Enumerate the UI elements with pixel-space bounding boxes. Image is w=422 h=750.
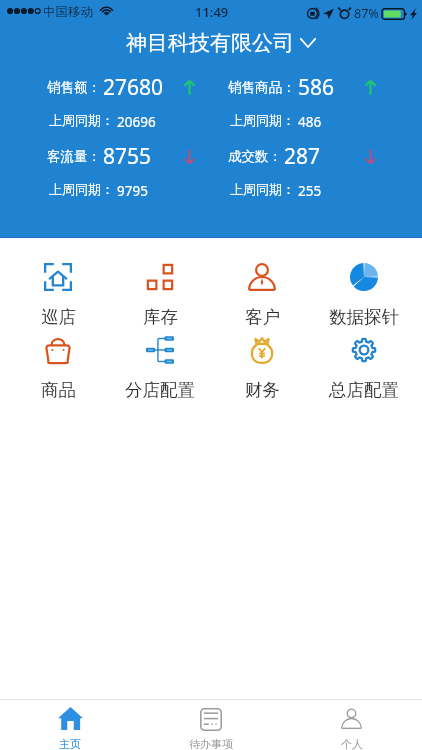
staticText: 上周同期： — [230, 181, 295, 197]
staticText: 销售额： — [47, 79, 101, 96]
button[interactable]: 总店配置 — [313, 336, 415, 401]
staticText: 11:49 — [195, 3, 229, 21]
staticText: 上周同期： — [49, 181, 114, 197]
staticText: 8755 — [103, 142, 152, 171]
staticText: 库存 — [143, 306, 178, 328]
staticText: 财务 — [245, 379, 280, 401]
button[interactable]: 巡店 — [7, 263, 109, 328]
staticText: 主页 — [59, 737, 81, 750]
staticText: 客户 — [245, 306, 280, 328]
staticText: 数据探针 — [329, 306, 399, 328]
staticText: 9795 — [117, 182, 148, 200]
staticText: 上周同期： — [49, 112, 114, 128]
button[interactable]: 商品 — [7, 336, 109, 401]
staticText: 27680 — [103, 73, 164, 102]
other: Choose company — [300, 38, 316, 48]
button[interactable]: 主页 — [0, 700, 140, 750]
staticText: 分店配置 — [125, 379, 195, 401]
button[interactable]: 个人 — [281, 700, 422, 750]
button[interactable]: 客户 — [211, 263, 313, 328]
staticText: 成交数： — [228, 148, 282, 165]
staticText: 87% — [354, 5, 379, 22]
staticText: 商品 — [41, 379, 76, 401]
button[interactable]: 库存 — [109, 263, 211, 328]
staticText: 待办事项 — [189, 737, 233, 750]
staticText: 586 — [298, 73, 335, 102]
staticText: 255 — [298, 182, 322, 200]
button[interactable]: 分店配置 — [109, 336, 211, 401]
staticText: 销售商品： — [228, 79, 296, 96]
button[interactable]: 神目科技有限公司 — [126, 30, 294, 56]
staticText: 中国移动 — [43, 4, 93, 20]
button[interactable]: 财务 — [211, 336, 313, 401]
staticText: 486 — [298, 113, 322, 131]
staticText: 客流量： — [47, 148, 101, 165]
staticText: 上周同期： — [230, 112, 295, 128]
staticText: 20696 — [117, 113, 156, 131]
button[interactable]: 数据探针 — [313, 263, 415, 328]
staticText: 个人 — [341, 737, 363, 750]
staticText: 神目科技有限公司 — [126, 30, 294, 56]
staticText: 287 — [284, 142, 321, 171]
button[interactable]: 待办事项 — [140, 700, 281, 750]
staticText: 总店配置 — [329, 379, 399, 401]
staticText: 巡店 — [41, 306, 76, 328]
